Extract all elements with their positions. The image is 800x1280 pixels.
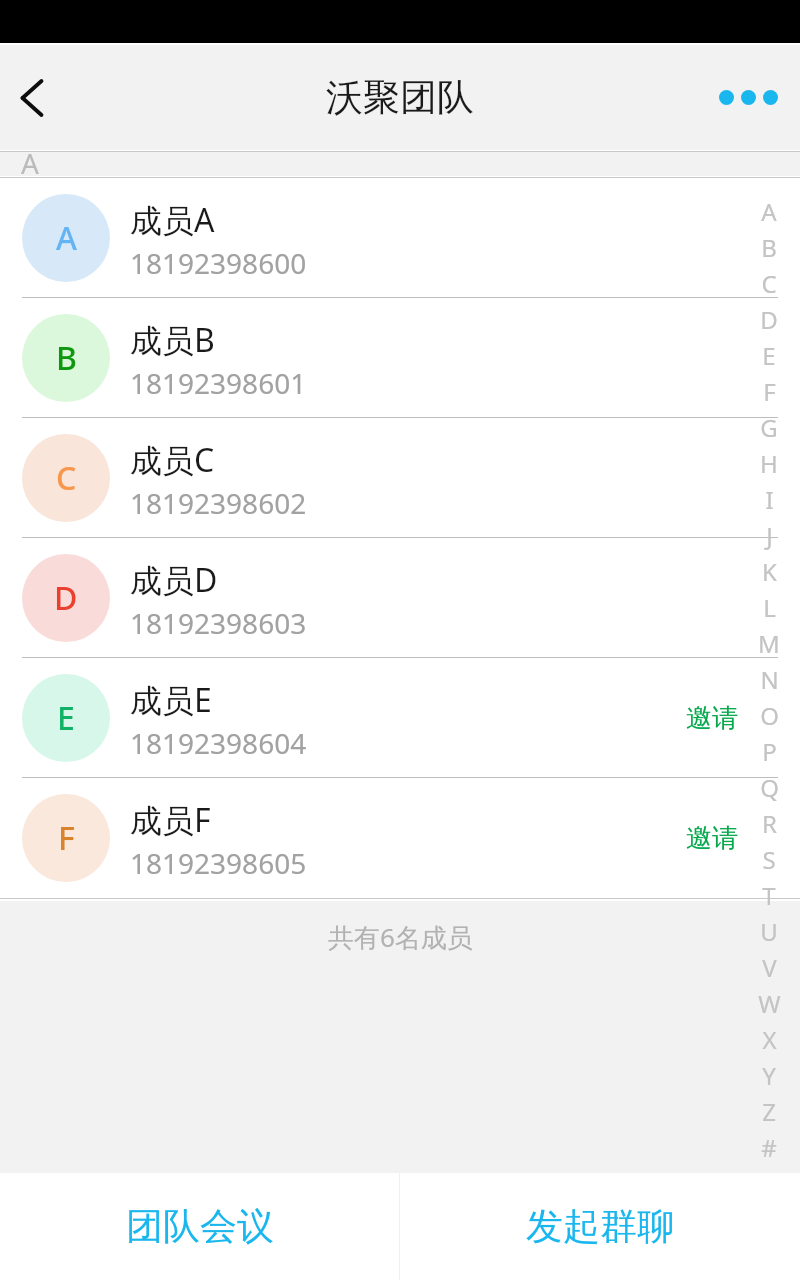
button[interactable]: S (743, 841, 795, 877)
staticText: N (760, 663, 779, 696)
staticText: Q (760, 771, 779, 804)
button[interactable]: More options (696, 45, 800, 150)
staticText: 成员C (130, 438, 215, 482)
other: Alphabet index (743, 193, 795, 1165)
button[interactable]: G (743, 409, 795, 445)
staticText: 18192398601 (130, 364, 307, 402)
button[interactable]: O (743, 697, 795, 733)
staticText: A (761, 195, 777, 228)
button[interactable]: M (743, 625, 795, 661)
button[interactable]: T (743, 877, 795, 913)
staticText: 18192398603 (130, 604, 307, 642)
button[interactable]: A (743, 193, 795, 229)
button[interactable]: Z (743, 1093, 795, 1129)
button[interactable]: R (743, 805, 795, 841)
button[interactable]: Y (743, 1057, 795, 1093)
staticText: C (56, 456, 77, 500)
button[interactable]: 邀请 (676, 810, 748, 867)
staticText: U (760, 915, 778, 948)
staticText: C (761, 267, 777, 300)
button[interactable]: # (743, 1129, 795, 1165)
button[interactable]: J (743, 517, 795, 553)
staticText: # (761, 1131, 777, 1164)
staticText: J (766, 519, 773, 552)
staticText: W (758, 987, 781, 1020)
button[interactable]: 团队会议 (0, 1173, 399, 1280)
staticText: A (21, 144, 39, 182)
button[interactable]: E (743, 337, 795, 373)
button[interactable]: K (743, 553, 795, 589)
button[interactable]: A (0, 178, 800, 298)
button[interactable]: F (743, 373, 795, 409)
staticText: Z (762, 1095, 776, 1128)
button[interactable]: W (743, 985, 795, 1021)
staticText: 成员F (130, 798, 211, 842)
button[interactable]: X (743, 1021, 795, 1057)
button[interactable]: F (0, 778, 800, 898)
staticText: F (763, 375, 776, 408)
button[interactable]: D (0, 538, 800, 658)
staticText: X (762, 1023, 777, 1056)
staticText: Y (762, 1059, 776, 1092)
button[interactable]: D (743, 301, 795, 337)
staticText: 邀请 (686, 822, 738, 855)
staticText: 18192398600 (130, 244, 307, 282)
staticText: O (760, 699, 779, 732)
staticText: F (58, 816, 75, 860)
button[interactable]: C (0, 418, 800, 538)
staticText: R (762, 807, 777, 840)
staticText: K (762, 555, 777, 588)
staticText: E (57, 696, 75, 740)
staticText: B (56, 336, 77, 380)
staticText: D (54, 576, 78, 620)
button[interactable]: B (743, 229, 795, 265)
staticText: L (763, 591, 776, 624)
staticText: A (56, 216, 77, 260)
button[interactable]: I (743, 481, 795, 517)
button[interactable]: N (743, 661, 795, 697)
staticText: 18192398604 (130, 724, 307, 762)
staticText: 成员E (130, 678, 212, 722)
staticText: D (760, 303, 778, 336)
staticText: 成员D (130, 558, 218, 602)
button[interactable]: 邀请 (676, 690, 748, 747)
staticText: V (762, 951, 777, 984)
staticText: B (761, 231, 777, 264)
staticText: 成员A (130, 198, 215, 242)
button[interactable]: H (743, 445, 795, 481)
button[interactable]: V (743, 949, 795, 985)
staticText: P (762, 735, 777, 768)
staticText: 沃聚团队 (326, 74, 474, 121)
button[interactable]: P (743, 733, 795, 769)
staticText: I (765, 483, 774, 516)
staticText: 共有6名成员 (328, 919, 473, 955)
button[interactable]: Q (743, 769, 795, 805)
staticText: 18192398602 (130, 484, 307, 522)
staticText: 邀请 (686, 702, 738, 735)
staticText: 18192398605 (130, 844, 307, 882)
staticText: T (762, 879, 776, 912)
staticText: S (762, 843, 776, 876)
button[interactable]: E (0, 658, 800, 778)
staticText: 团队会议 (126, 1203, 274, 1250)
staticText: H (760, 447, 778, 480)
staticText: M (758, 627, 780, 660)
button[interactable]: L (743, 589, 795, 625)
staticText: E (762, 339, 776, 372)
button[interactable]: 发起群聊 (400, 1173, 800, 1280)
button[interactable]: C (743, 265, 795, 301)
staticText: 发起群聊 (526, 1203, 674, 1250)
button[interactable]: B (0, 298, 800, 418)
staticText: G (760, 411, 778, 444)
button[interactable]: Back (0, 45, 64, 150)
staticText: 成员B (130, 318, 215, 362)
button[interactable]: U (743, 913, 795, 949)
